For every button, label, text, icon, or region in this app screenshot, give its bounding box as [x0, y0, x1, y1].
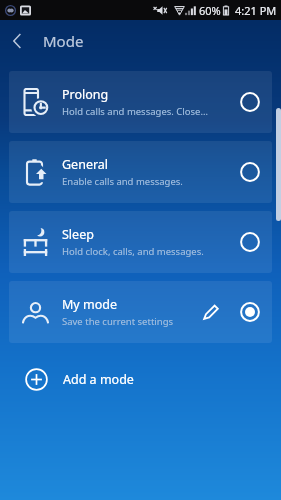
staticText: Save the current settings	[62, 315, 174, 328]
staticText: My mode	[62, 296, 117, 313]
staticText: 4:21 PM	[235, 3, 277, 18]
button[interactable]: Prolong	[9, 71, 272, 133]
staticText: Mode	[43, 31, 84, 51]
staticText: Sleep	[62, 226, 94, 243]
staticText: 60%	[199, 3, 221, 18]
button[interactable]: Select General	[231, 153, 269, 191]
staticText: Add a mode	[63, 371, 134, 388]
staticText: Enable calls and messages.	[62, 175, 183, 188]
button[interactable]: General	[9, 141, 272, 203]
staticText: Hold clock, calls, and messages.	[62, 245, 204, 258]
staticText: General	[62, 156, 109, 173]
button[interactable]: Back	[0, 24, 34, 58]
staticText: Prolong	[62, 86, 109, 103]
button[interactable]: My mode	[9, 281, 272, 343]
button[interactable]: Select Sleep	[231, 223, 269, 261]
button[interactable]: Select Prolong	[231, 83, 269, 121]
button[interactable]: Select My mode	[231, 293, 269, 331]
button[interactable]: Edit mode	[194, 295, 228, 329]
button[interactable]: Add a mode	[0, 356, 281, 402]
button[interactable]: Sleep	[9, 211, 272, 273]
staticText: Hold calls and messages. Close…	[62, 105, 208, 118]
